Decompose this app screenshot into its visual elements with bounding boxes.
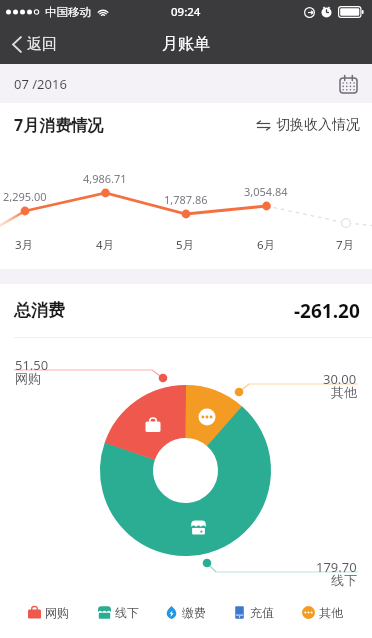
button[interactable]: 切换收入情况 [244,112,372,138]
staticText: 30.00 [323,370,357,388]
button[interactable]: Pick month [336,72,360,96]
staticText: 充值 [250,605,274,620]
staticText: 5月 [176,237,195,253]
staticText: 1,787.86 [164,192,208,207]
staticText: 3,054.84 [244,184,288,199]
staticText: 7月 [336,237,355,253]
button[interactable]: 返回 [0,29,69,60]
button[interactable]: 充值 [230,600,277,625]
staticText: 51.50 [15,356,49,374]
staticText: 返回 [27,35,57,54]
staticText: 179.70 [316,558,357,576]
staticText: 其他 [319,605,343,620]
button[interactable]: 线下 [95,600,142,625]
staticText: 6月 [257,237,276,253]
staticText: 其他 [331,384,357,400]
staticText: 缴费 [182,605,206,620]
staticText: 月账单 [162,34,210,54]
staticText: 09:24 [171,4,201,20]
button[interactable]: 其他 [299,600,346,625]
button[interactable]: 缴费 [162,600,209,625]
staticText: 中国移动 [45,5,91,19]
staticText: 线下 [115,605,139,620]
staticText: 总消费 [14,300,65,321]
staticText: 切换收入情况 [276,116,360,134]
staticText: 线下 [331,572,357,588]
staticText: 4月 [96,237,115,253]
staticText: -261.20 [294,298,360,324]
staticText: 网购 [45,605,69,620]
staticText: 07 /2016 [14,75,67,93]
button[interactable]: 网购 [25,600,72,625]
staticText: 3月 [15,237,34,253]
staticText: 4,986.71 [83,171,127,186]
staticText: 2,295.00 [3,189,47,204]
staticText: 网购 [15,370,41,386]
staticText: 7月消费情况 [14,114,104,136]
